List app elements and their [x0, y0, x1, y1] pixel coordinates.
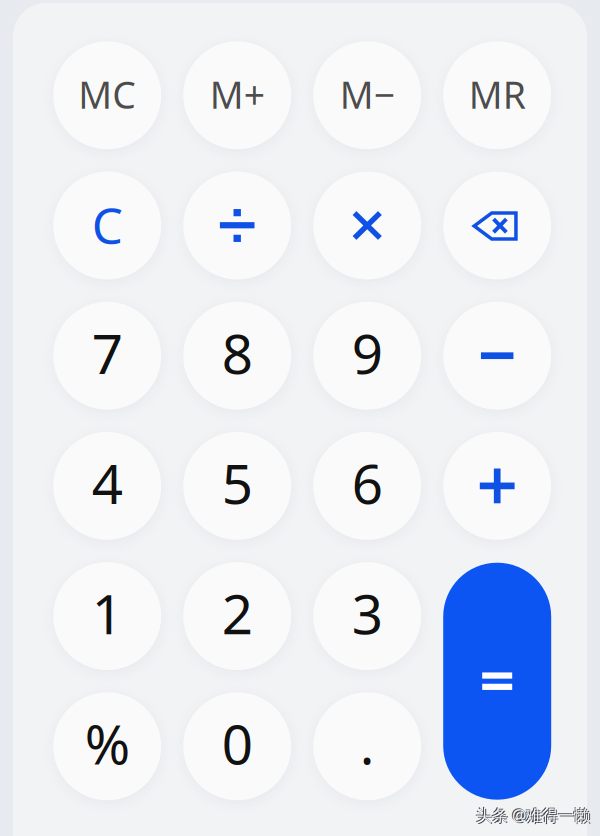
button[interactable]: 7: [53, 302, 161, 410]
button[interactable]: MR: [443, 41, 551, 149]
staticText: 4: [92, 447, 123, 519]
button[interactable]: MC: [53, 41, 161, 149]
button[interactable]: C: [53, 171, 161, 279]
staticText: 1: [92, 577, 123, 649]
button[interactable]: 2: [183, 562, 291, 670]
button[interactable]: 8: [183, 302, 291, 410]
staticText: MC: [78, 69, 136, 119]
button[interactable]: 9: [313, 302, 421, 410]
button[interactable]: %: [53, 692, 161, 800]
staticText: 0: [222, 707, 253, 780]
button[interactable]: 1: [53, 562, 161, 670]
staticText: %: [85, 707, 130, 780]
staticText: 头条 @难得一懒: [477, 805, 591, 826]
button[interactable]: 5: [183, 432, 291, 540]
button[interactable]: Multiply: [313, 171, 421, 279]
button[interactable]: 0: [183, 692, 291, 800]
staticText: M+: [210, 69, 265, 119]
staticText: 9: [352, 316, 383, 389]
button[interactable]: .: [313, 692, 421, 800]
button[interactable]: 6: [313, 432, 421, 540]
staticText: 3: [352, 577, 383, 649]
button[interactable]: 3: [313, 562, 421, 670]
staticText: 2: [222, 577, 253, 649]
button[interactable]: Equals: [443, 563, 551, 800]
button[interactable]: Plus: [443, 432, 551, 540]
staticText: .: [360, 707, 375, 780]
staticText: 6: [352, 447, 383, 519]
button[interactable]: M−: [313, 41, 421, 149]
button[interactable]: Divide: [183, 171, 291, 279]
button[interactable]: Backspace: [443, 171, 551, 279]
button[interactable]: Minus: [443, 302, 551, 410]
staticText: 8: [222, 316, 253, 389]
staticText: MR: [469, 69, 526, 119]
staticText: C: [92, 192, 123, 257]
button[interactable]: 4: [53, 432, 161, 540]
staticText: 7: [92, 316, 123, 389]
staticText: M−: [340, 69, 395, 119]
staticText: 5: [222, 447, 253, 519]
staticText: 头条 @难得一懒: [475, 803, 589, 825]
button[interactable]: M+: [183, 41, 291, 149]
staticText: 头条 @难得一懒: [476, 804, 590, 826]
